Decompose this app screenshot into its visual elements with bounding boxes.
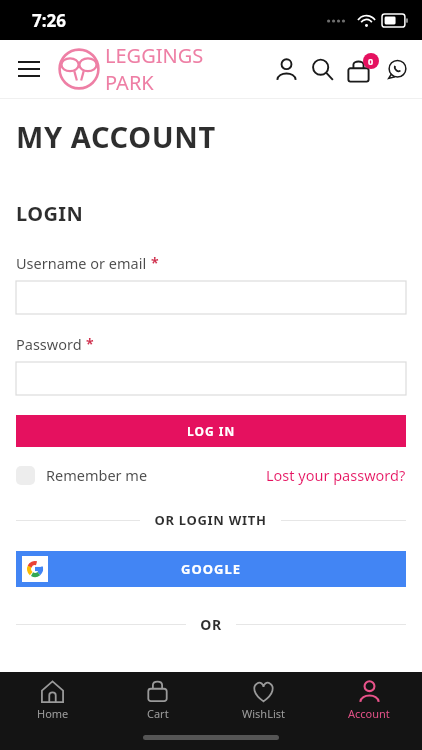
button[interactable]: WhatsApp [380, 50, 414, 88]
button[interactable]: Account [268, 51, 304, 87]
staticText: OR LOGIN WITH [154, 511, 267, 529]
button[interactable]: WishList [210, 675, 316, 721]
staticText: WishList [242, 706, 285, 721]
button[interactable]: Cart, 0 items [340, 49, 380, 89]
staticText: * [86, 334, 94, 353]
staticText: Password [16, 334, 82, 354]
button[interactable]: Account [316, 675, 422, 721]
staticText: Lost your password? [266, 465, 406, 485]
button[interactable]: Cart [105, 675, 210, 721]
staticText: PARK [105, 69, 154, 96]
staticText: * [151, 253, 159, 272]
button[interactable]: Lost your password? [266, 465, 406, 485]
button[interactable]: Remember me [16, 465, 148, 485]
staticText: Username or email [16, 253, 147, 273]
button[interactable]: Leggings Park home [58, 42, 204, 96]
staticText: MY ACCOUNT [16, 117, 216, 156]
staticText: LEGGINGS [105, 42, 204, 69]
button[interactable]: Search [304, 51, 340, 87]
staticText: 0 [368, 55, 374, 67]
staticText: OR [200, 615, 222, 634]
staticText: Home [37, 706, 69, 721]
staticText: LOG IN [187, 423, 236, 439]
staticText: Cart [147, 706, 169, 721]
staticText: 7:26 [32, 9, 66, 32]
staticText: GOOGLE [181, 560, 241, 578]
button[interactable] [16, 281, 406, 314]
staticText: Account [348, 706, 390, 721]
button[interactable]: LOG IN [16, 415, 406, 447]
button[interactable]: Home [0, 675, 105, 721]
button[interactable]: GOOGLE [16, 551, 406, 587]
staticText: LOGIN [16, 200, 84, 227]
button[interactable]: Menu [8, 48, 50, 90]
button[interactable] [16, 362, 406, 395]
staticText: Remember me [46, 465, 148, 485]
